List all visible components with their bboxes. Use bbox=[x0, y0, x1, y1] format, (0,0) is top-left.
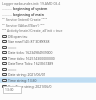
button[interactable]: DateTime Ticks: 1623567489 bbox=[0, 61, 96, 66]
button[interactable]: DB open tru bbox=[0, 33, 96, 39]
staticText: Time ticks: 162514300000000 bbox=[8, 56, 55, 61]
staticText: "" Service ((Atlas)('Barr') """ bbox=[2, 23, 45, 28]
staticText: "" Service (intent) Create """" bbox=[2, 17, 48, 22]
button[interactable]: --------- bbox=[0, 6, 96, 11]
button[interactable]: --------- bbox=[0, 11, 96, 17]
staticText: Time string: 13:30 bbox=[8, 78, 37, 83]
button[interactable]: Time ticks: 162514300000000 bbox=[0, 55, 96, 61]
staticText: oooo bbox=[8, 67, 17, 72]
button[interactable]: Time string: 13:30 bbox=[0, 77, 96, 83]
button[interactable]: oooo bbox=[0, 66, 96, 72]
staticText: beginning of system bbox=[13, 6, 48, 11]
staticText: beginning of main bbox=[13, 12, 44, 17]
staticText: Date ticks: 16234984939000 bbox=[8, 50, 53, 55]
button[interactable]: Date ticks: 16234984939000 bbox=[0, 50, 96, 55]
staticText: """ Activity (main) Create, all'init = t… bbox=[2, 28, 63, 33]
button[interactable]: Logger websunder-init: 19.AMD 03.4 bbox=[0, 0, 96, 6]
button[interactable]: oooo bbox=[0, 44, 96, 50]
button[interactable]: DateTime string: 2021/06/0 bbox=[0, 83, 96, 89]
staticText: 13:30 bbox=[5, 87, 14, 91]
staticText: DateTime string: 2021/06/0 bbox=[8, 84, 52, 89]
staticText: Size new/143: 81'3D8Y838 bbox=[8, 39, 50, 44]
button[interactable]: "" Service (intent) Create """" bbox=[0, 17, 96, 22]
staticText: Date string: 2021/06/01 bbox=[8, 72, 46, 77]
button[interactable]: Date string: 2021/06/01 bbox=[0, 72, 96, 77]
staticText: --------- bbox=[2, 6, 13, 11]
staticText: --------- bbox=[2, 12, 13, 17]
staticText: Logger websunder-init: 19.AMD 03.4 bbox=[2, 1, 61, 6]
staticText: DateTime Ticks: 1623567489 bbox=[8, 61, 54, 66]
staticText: DB open tru bbox=[8, 34, 28, 39]
staticText: oooo bbox=[8, 45, 17, 50]
button[interactable]: "" Service ((Atlas)('Barr') """ bbox=[0, 22, 96, 28]
button[interactable]: """ Activity (main) Create, all'init = t… bbox=[0, 28, 96, 33]
button[interactable]: Size new/143: 81'3D8Y838 bbox=[0, 39, 96, 44]
